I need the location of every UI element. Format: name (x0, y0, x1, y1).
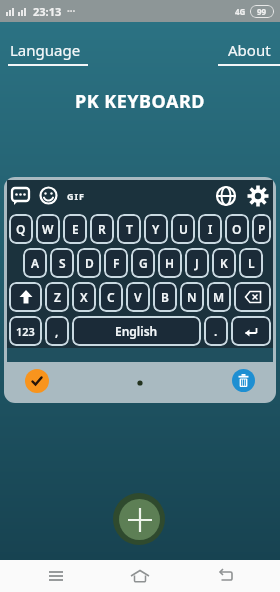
button[interactable] (39, 186, 58, 205)
button[interactable] (113, 493, 165, 545)
staticText: O (232, 221, 242, 237)
button[interactable] (11, 186, 31, 206)
staticText: ··· (67, 4, 76, 18)
staticText: , (55, 323, 59, 339)
staticText: X (80, 289, 88, 305)
button[interactable]: S (50, 248, 74, 278)
button[interactable] (231, 316, 271, 346)
staticText: V (134, 289, 142, 305)
button[interactable]: , (45, 316, 69, 346)
button[interactable]: U (171, 214, 195, 244)
button[interactable]: GIF (67, 190, 85, 202)
staticText: D (85, 255, 94, 271)
staticText: T (126, 221, 133, 237)
staticText: G (139, 255, 148, 271)
button[interactable]: About (218, 40, 280, 66)
button[interactable]: Q (9, 214, 33, 244)
button[interactable] (232, 369, 255, 392)
button[interactable]: R (90, 214, 114, 244)
button[interactable] (9, 282, 42, 312)
staticText: English (115, 323, 158, 339)
staticText: J (195, 255, 199, 271)
button[interactable]: A (23, 248, 47, 278)
button[interactable]: G (131, 248, 155, 278)
staticText: 99 (257, 6, 267, 17)
button[interactable]: K (212, 248, 236, 278)
button[interactable]: B (153, 282, 177, 312)
button[interactable] (124, 560, 156, 592)
button[interactable] (234, 282, 271, 312)
staticText: Q (16, 221, 26, 237)
button[interactable]: Y (144, 214, 168, 244)
staticText: Y (152, 221, 160, 237)
staticText: P (258, 221, 266, 237)
button[interactable] (25, 369, 49, 393)
button[interactable]: English (72, 316, 201, 346)
button[interactable] (247, 185, 269, 207)
button[interactable]: D (77, 248, 101, 278)
button[interactable]: J (185, 248, 209, 278)
button[interactable]: E (63, 214, 87, 244)
staticText: R (98, 221, 106, 237)
button[interactable]: H (158, 248, 182, 278)
staticText: L (248, 255, 255, 271)
button[interactable]: V (126, 282, 150, 312)
staticText: Z (54, 289, 61, 305)
button[interactable] (210, 560, 242, 592)
button[interactable]: Z (45, 282, 69, 312)
button[interactable]: O (225, 214, 249, 244)
staticText: B (161, 289, 169, 305)
button[interactable] (40, 560, 72, 592)
staticText: 4G (235, 6, 246, 17)
staticText: H (165, 255, 175, 271)
staticText: N (187, 289, 197, 305)
staticText: K (220, 255, 228, 271)
button[interactable] (215, 185, 237, 207)
button[interactable]: 123 (9, 316, 42, 346)
button[interactable]: Language (8, 40, 88, 66)
staticText: E (72, 221, 79, 237)
button[interactable]: L (239, 248, 263, 278)
staticText: 23:13 (33, 4, 62, 19)
button[interactable]: C (99, 282, 123, 312)
staticText: M (213, 289, 225, 305)
staticText: 123 (16, 324, 35, 339)
button[interactable]: N (180, 282, 204, 312)
button[interactable]: F (104, 248, 128, 278)
button[interactable]: T (117, 214, 141, 244)
staticText: S (59, 255, 66, 271)
staticText: U (179, 221, 188, 237)
staticText: C (107, 289, 115, 305)
button[interactable]: M (207, 282, 231, 312)
staticText: A (31, 255, 40, 271)
staticText: Language (10, 40, 81, 60)
staticText: PK KEYBOARD (75, 89, 205, 114)
button[interactable]: . (204, 316, 228, 346)
staticText: I (208, 221, 213, 237)
button[interactable]: W (36, 214, 60, 244)
button[interactable]: I (198, 214, 222, 244)
button[interactable]: P (252, 214, 271, 244)
staticText: W (42, 221, 54, 237)
staticText: F (113, 255, 120, 271)
button[interactable]: X (72, 282, 96, 312)
staticText: About (228, 40, 271, 60)
staticText: . (214, 323, 218, 339)
